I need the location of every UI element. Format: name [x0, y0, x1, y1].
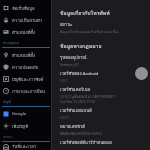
button[interactable]: ตำแหน่งที่ตั้ง — [0, 26, 51, 38]
button[interactable]: Fast scroll — [135, 67, 148, 80]
staticText: บัญชี — [3, 99, 11, 105]
staticText: วันที่และเวลา — [12, 143, 37, 150]
staticText: สถานะ — [60, 21, 73, 28]
staticText: บัญชีและการซิงค์ข้อมูล — [12, 76, 49, 83]
staticText: 3.18.31-g8bd0b3f #1 SMP PREEMPT — [60, 94, 116, 98]
staticText: เพิ่มบัญชี — [12, 123, 29, 130]
button[interactable]: รุ่นของอุปกรณ์ — [52, 52, 150, 68]
staticText: ตำแหน่งที่ตั้ง — [12, 52, 35, 59]
button[interactable]: หมายเลขบิวด์ — [52, 121, 150, 137]
button[interactable]: สถานะ — [52, 19, 150, 36]
staticText: ส่วนบุคคล — [3, 40, 19, 46]
staticText: Tue Nov 15 2016 17:30 — [60, 99, 95, 103]
staticText: จัดเก็บข้อมูล — [12, 5, 35, 12]
staticText: Google — [12, 111, 27, 117]
staticText: ภาษาและการป้อนข้อมูล — [12, 88, 49, 95]
button[interactable]: ความปลอดภัย — [0, 61, 51, 73]
button[interactable]: เวอร์ชันเบสแบนด์ — [52, 105, 150, 121]
button[interactable]: จัดเก็บข้อมูล — [0, 2, 51, 14]
staticText: รุ่นของอุปกรณ์ — [60, 54, 87, 61]
staticText: ข้อมูลเกี่ยวกับแบตเตอรี่ เครือข่ายและอื่… — [60, 29, 119, 34]
button[interactable]: เพิ่มบัญชี — [0, 120, 51, 132]
staticText: 6.0.1 — [60, 78, 68, 82]
button[interactable]: วันที่และเวลา — [0, 143, 51, 150]
staticText: Samsung S7 — [60, 62, 79, 66]
button[interactable]: เวอร์ชันเคอร์เนล — [52, 84, 150, 105]
staticText: 5.0.17 — [60, 115, 70, 119]
staticText: เวอร์ชันของ Android — [60, 70, 99, 77]
staticText: เวอร์ชันซอฟต์แวร์กำหนดเอง — [60, 139, 112, 146]
staticText: ความปลอดภัย — [12, 64, 38, 71]
button[interactable]: เวอร์ชันซอฟต์แวร์กำหนดเอง — [52, 137, 150, 150]
staticText: เวอร์ชันเบสแบนด์ — [60, 107, 92, 114]
staticText: ระบบ — [3, 134, 12, 140]
button[interactable]: Google — [0, 108, 51, 120]
staticText: MMB29M.G930FXXU1APG2 — [60, 131, 102, 135]
button[interactable]: บัญชีและการซิงค์ข้อมูล — [0, 73, 51, 85]
button[interactable]: เวอร์ชันของ Android — [52, 68, 150, 84]
staticText: ข้อมูลทางกฎหมาย — [60, 42, 102, 50]
staticText: ความเป็นส่วนตัว — [12, 17, 43, 24]
staticText: ข้อมูลเกี่ยวกับโทรศัพท์ — [60, 9, 110, 17]
staticText: เวอร์ชันเคอร์เนล — [60, 86, 91, 93]
button[interactable]: ภาษาและการป้อนข้อมูล — [0, 85, 51, 97]
button[interactable]: ตำแหน่งที่ตั้ง — [0, 49, 51, 61]
staticText: หมายเลขบิวด์ — [60, 123, 85, 130]
staticText: ตำแหน่งที่ตั้ง — [12, 29, 35, 36]
button[interactable]: ความเป็นส่วนตัว — [0, 14, 51, 26]
